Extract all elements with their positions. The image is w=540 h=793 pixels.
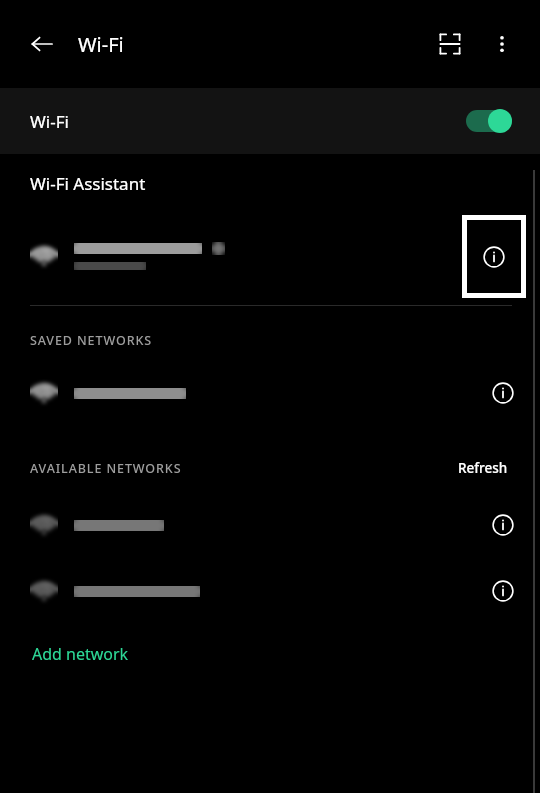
- button[interactable]: Available network details: [0, 563, 540, 619]
- button[interactable]: Add network: [30, 637, 131, 671]
- staticText: Wi-Fi: [78, 31, 124, 58]
- button[interactable]: Available network details: [0, 497, 540, 553]
- button[interactable]: Available network details: [480, 502, 526, 548]
- staticText: AVAILABLE NETWORKS: [30, 460, 182, 477]
- button[interactable]: Wi-Fi: [0, 88, 540, 154]
- staticText: Wi-Fi Assistant: [30, 172, 146, 195]
- button[interactable]: Saved network details: [480, 370, 526, 416]
- staticText: SAVED NETWORKS: [30, 332, 153, 349]
- staticText: Refresh: [458, 459, 508, 477]
- button[interactable]: Refresh: [454, 455, 512, 481]
- button[interactable]: More options: [480, 22, 524, 66]
- button[interactable]: Saved network details: [0, 367, 540, 419]
- staticText: Wi-Fi: [30, 110, 69, 133]
- button[interactable]: Scan QR code: [426, 20, 474, 68]
- button[interactable]: Navigate up: [18, 20, 66, 68]
- button[interactable]: Network details: [0, 211, 540, 301]
- staticText: Add network: [32, 643, 129, 665]
- button[interactable]: Available network details: [480, 568, 526, 614]
- button[interactable]: Network details: [467, 220, 521, 293]
